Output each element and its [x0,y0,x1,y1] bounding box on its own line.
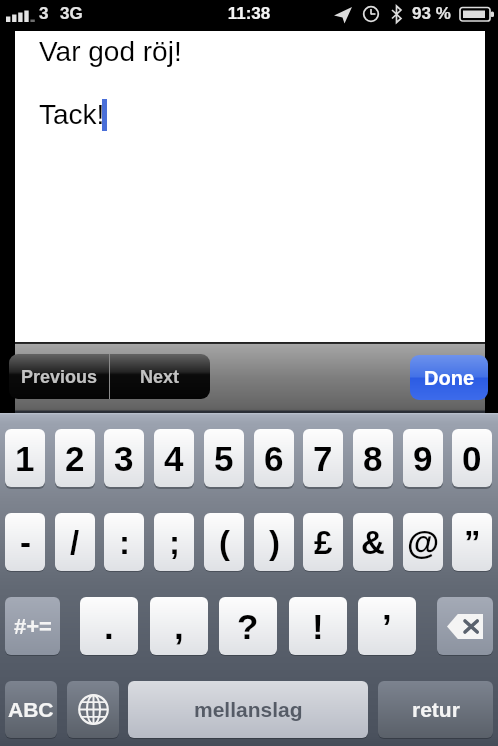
button[interactable]: 6 [254,429,294,487]
button[interactable]: Previous [9,354,109,399]
button[interactable]: retur [378,681,493,738]
staticText: 9 [413,439,433,478]
staticText: 93 % [412,4,451,23]
button[interactable]: & [353,513,393,571]
staticText: Next [140,367,180,387]
staticText: 7 [313,439,333,478]
button[interactable]: Delete [437,597,493,655]
staticText: . [104,607,114,646]
button[interactable]: Done [410,355,488,400]
staticText: Var god röj! [39,36,182,67]
button[interactable]: ! [289,597,347,655]
staticText: 5 [214,439,234,478]
button[interactable]: #+= [5,597,60,655]
staticText: ( [219,524,230,561]
staticText: & [361,524,385,561]
button[interactable]: . [80,597,138,655]
staticText: Previous [21,367,98,387]
staticText: : [119,524,130,561]
staticText: ’ [382,607,392,646]
button[interactable]: 8 [353,429,393,487]
staticText: retur [412,698,460,721]
button[interactable]: ) [254,513,294,571]
button[interactable]: ’ [358,597,416,655]
staticText: 11:38 [0,4,498,23]
button[interactable]: ” [452,513,492,571]
staticText: 3 [114,439,134,478]
button[interactable]: 0 [452,429,492,487]
staticText: @ [407,524,440,561]
staticText: £ [314,524,333,561]
button[interactable]: : [104,513,144,571]
staticText: Done [424,367,474,389]
staticText: / [70,524,80,561]
button[interactable]: Next [110,354,210,399]
button[interactable]: 4 [154,429,194,487]
staticText: ABC [8,698,54,721]
button[interactable]: 7 [303,429,343,487]
button[interactable]: £ [303,513,343,571]
button[interactable]: ; [154,513,194,571]
staticText: , [174,607,184,646]
staticText: ? [237,607,259,646]
staticText: ; [169,524,180,561]
staticText: 0 [462,439,482,478]
button[interactable]: / [55,513,95,571]
button[interactable]: Next keyboard [67,681,119,738]
staticText: Tack! [39,99,105,130]
button[interactable]: 5 [204,429,244,487]
staticText: 8 [363,439,383,478]
staticText: 3G [60,4,83,23]
staticText: 6 [264,439,284,478]
button[interactable]: 1 [5,429,45,487]
button[interactable]: ABC [5,681,57,738]
staticText: 3 [39,4,49,23]
button[interactable]: 9 [403,429,443,487]
button[interactable]: @ [403,513,443,571]
staticText: 2 [65,439,85,478]
staticText: ” [464,524,481,561]
button[interactable]: mellanslag [128,681,368,738]
button[interactable]: 2 [55,429,95,487]
button[interactable]: - [5,513,45,571]
staticText: ) [269,524,280,561]
staticText: 4 [164,439,184,478]
button[interactable]: 3 [104,429,144,487]
staticText: ! [312,607,324,646]
button[interactable]: , [150,597,208,655]
button[interactable]: ( [204,513,244,571]
staticText: #+= [14,614,52,639]
button[interactable]: ? [219,597,277,655]
staticText: 1 [15,439,35,478]
staticText: mellanslag [194,698,303,721]
staticText: - [20,524,31,561]
